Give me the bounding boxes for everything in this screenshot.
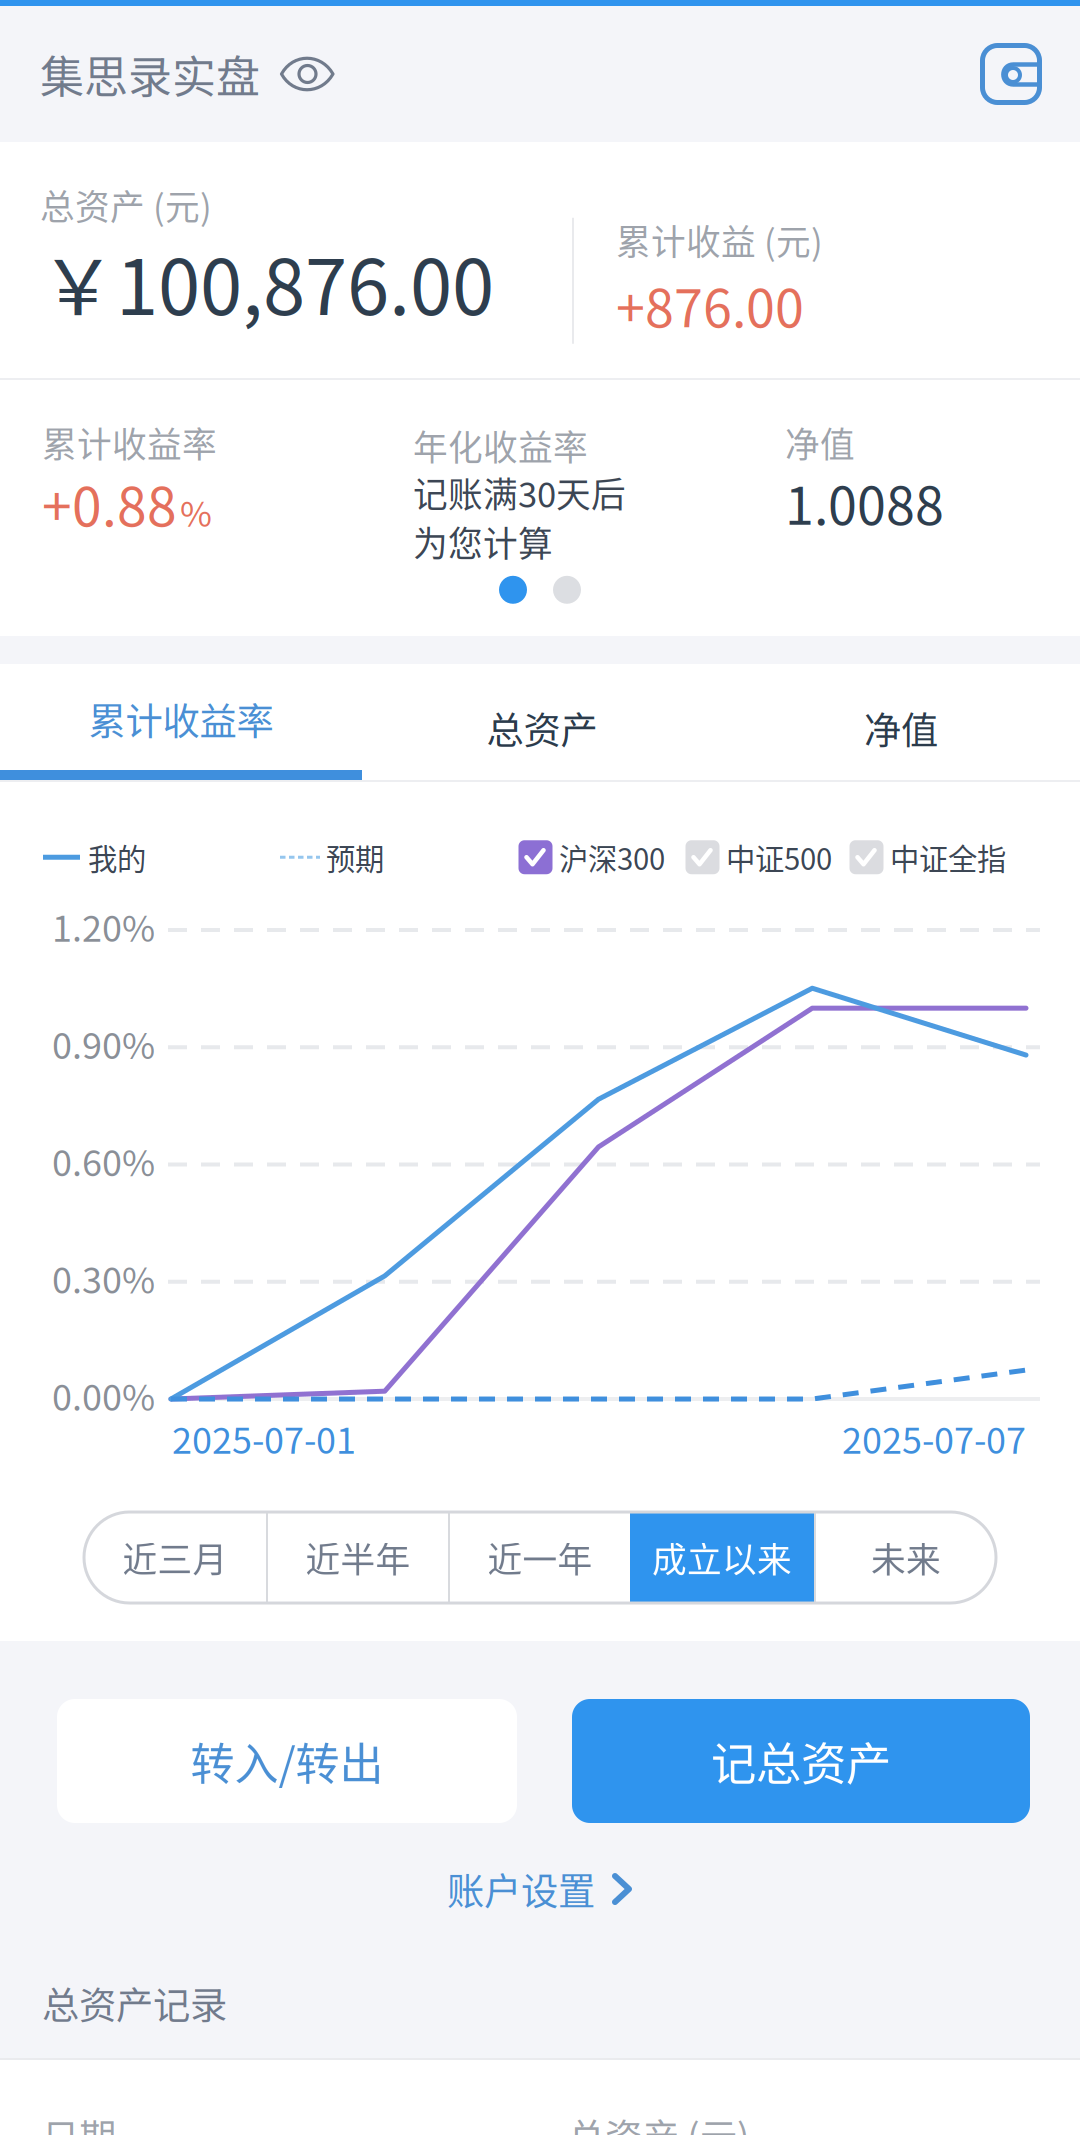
button[interactable]: 成立以来	[630, 1512, 814, 1603]
staticText: 累计收益率	[88, 692, 273, 746]
button[interactable]: 记总资产	[572, 1699, 1030, 1823]
button[interactable]: 集思录实盘	[0, 12, 335, 136]
button[interactable]: 近半年	[268, 1512, 448, 1603]
staticText: 成立以来	[652, 1532, 792, 1583]
staticText: %	[180, 486, 212, 537]
staticText: 近半年	[305, 1532, 410, 1583]
staticText: 预期	[326, 836, 384, 878]
staticText: ￥100,876.00	[40, 227, 494, 337]
staticText: 0.30%	[52, 1252, 155, 1304]
staticText: 0.90%	[52, 1017, 155, 1069]
staticText: 0.60%	[52, 1134, 155, 1187]
staticText: 1.0088	[785, 464, 944, 540]
staticText: 净值	[864, 701, 938, 755]
staticText: 近三月	[122, 1532, 227, 1583]
staticText: 中证全指	[890, 836, 1006, 878]
staticText: 总资产 (元)	[568, 2108, 750, 2135]
staticText: 累计收益 (元)	[616, 215, 823, 265]
staticText: 未来	[871, 1532, 941, 1583]
staticText: 年化收益率	[413, 420, 588, 470]
staticText: 0.00%	[52, 1369, 155, 1421]
staticText: 转入/转出	[190, 1729, 383, 1793]
staticText: 账户设置	[447, 1862, 595, 1916]
staticText: 总资产记录	[42, 1976, 227, 2030]
staticText: +876.00	[616, 267, 804, 342]
staticText: 近一年	[487, 1532, 592, 1583]
staticText: 为您计算	[413, 517, 553, 567]
staticText: 日期	[42, 2108, 116, 2135]
button[interactable]: 近三月	[84, 1512, 266, 1603]
staticText: 中证500	[726, 836, 832, 878]
staticText: 我的	[88, 836, 146, 878]
staticText: 2025-07-01	[172, 1412, 356, 1464]
staticText: 记账满30天后	[413, 467, 626, 518]
button[interactable]: 总资产	[362, 664, 722, 780]
button[interactable]: 转入/转出	[57, 1699, 517, 1823]
staticText: 1.20%	[52, 900, 155, 952]
button[interactable]: 账户设置	[447, 1823, 633, 1936]
button[interactable]: Wallet	[980, 43, 1080, 105]
staticText: 总资产	[486, 701, 597, 755]
staticText: 记总资产	[711, 1728, 891, 1794]
staticText: 累计收益率	[42, 417, 217, 467]
staticText: 集思录实盘	[40, 42, 260, 106]
staticText: 沪深300	[559, 836, 665, 878]
button[interactable]: 净值	[722, 664, 1080, 780]
staticText: 2025-07-07	[842, 1412, 1026, 1464]
staticText: 总资产 (元)	[40, 180, 212, 230]
button[interactable]: 累计收益率	[0, 664, 362, 780]
staticText: +0.88	[42, 464, 177, 542]
button[interactable]: 近一年	[450, 1512, 630, 1603]
staticText: 净值	[785, 417, 855, 467]
button[interactable]: 未来	[816, 1512, 996, 1603]
